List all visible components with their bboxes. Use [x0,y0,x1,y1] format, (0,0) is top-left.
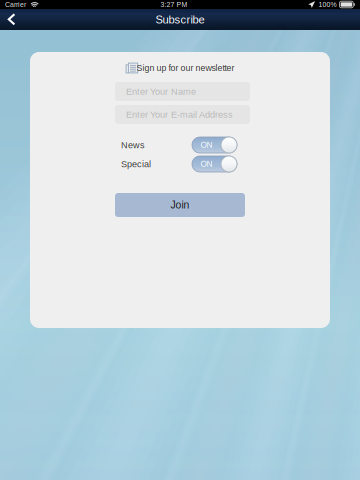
staticText: 3:27 PM [160,1,187,8]
button[interactable]: News notifications [192,137,237,153]
staticText: Sign up for our newsletter [136,63,234,73]
staticText: News [121,140,145,150]
staticText: ON [200,159,212,169]
staticText: Special [121,159,151,169]
staticText: Carrier [5,1,26,8]
staticText: Subscribe [155,13,204,26]
staticText: Enter Your Name [126,86,196,97]
staticText: Join [170,199,189,211]
staticText: ON [200,140,212,150]
button[interactable]: Join [115,193,245,217]
staticText: Enter Your E-mail Address [126,109,233,120]
button[interactable]: Special notifications [192,156,237,172]
button[interactable]: Back [0,9,24,30]
staticText: 100% [318,1,336,8]
